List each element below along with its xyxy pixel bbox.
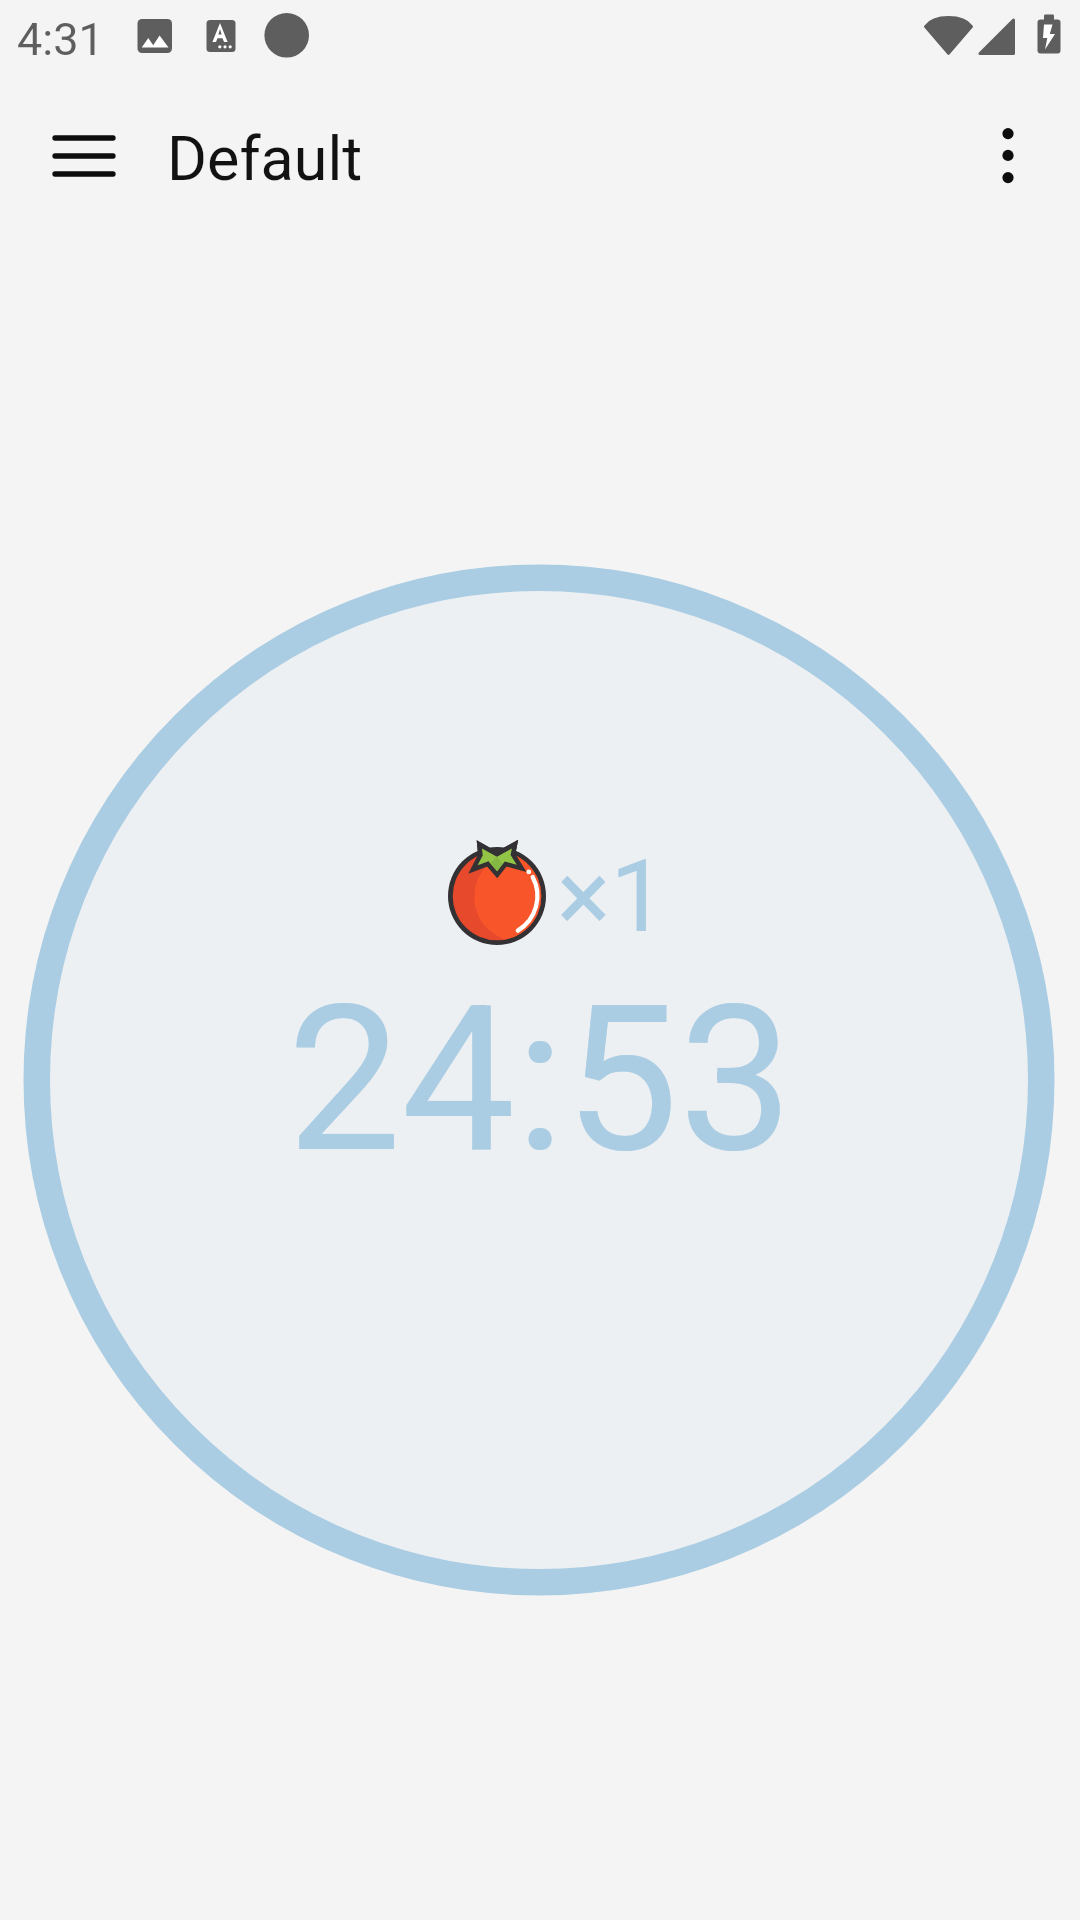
staticText: 24:53	[287, 961, 793, 1199]
button[interactable]: Open navigation drawer	[22, 107, 118, 203]
staticText: ×1	[557, 838, 667, 955]
staticText: Default	[167, 123, 363, 194]
staticText: 4:31	[17, 13, 104, 66]
button[interactable]: More options	[960, 107, 1056, 203]
button[interactable]: Start or pause the timer	[24, 565, 1055, 1596]
